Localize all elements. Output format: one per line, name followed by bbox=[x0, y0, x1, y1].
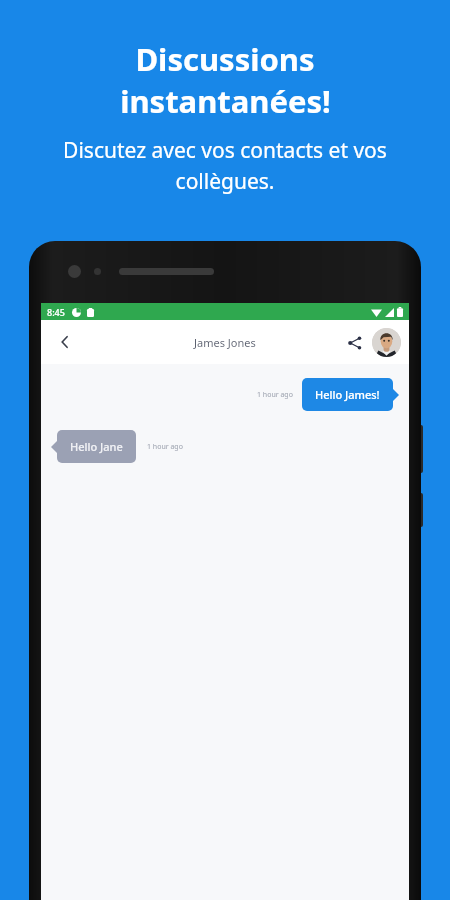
staticText: 1 hour ago bbox=[257, 390, 293, 400]
button[interactable]: Hello Jane bbox=[51, 430, 136, 463]
staticText: Discussions bbox=[135, 38, 315, 80]
staticText: Hello James! bbox=[315, 387, 380, 402]
staticText: 8:45 bbox=[47, 306, 65, 318]
button[interactable]: Back bbox=[49, 326, 81, 358]
button[interactable]: Share bbox=[342, 330, 368, 356]
button[interactable]: Profile bbox=[372, 328, 401, 357]
staticText: Discutez avec vos contacts et vos collèg… bbox=[63, 136, 387, 195]
staticText: instantanées! bbox=[120, 80, 331, 122]
button[interactable]: Hello James! bbox=[302, 378, 399, 411]
staticText: Hello Jane bbox=[70, 439, 123, 454]
staticText: James Jones bbox=[194, 335, 256, 350]
staticText: 1 hour ago bbox=[147, 442, 183, 452]
